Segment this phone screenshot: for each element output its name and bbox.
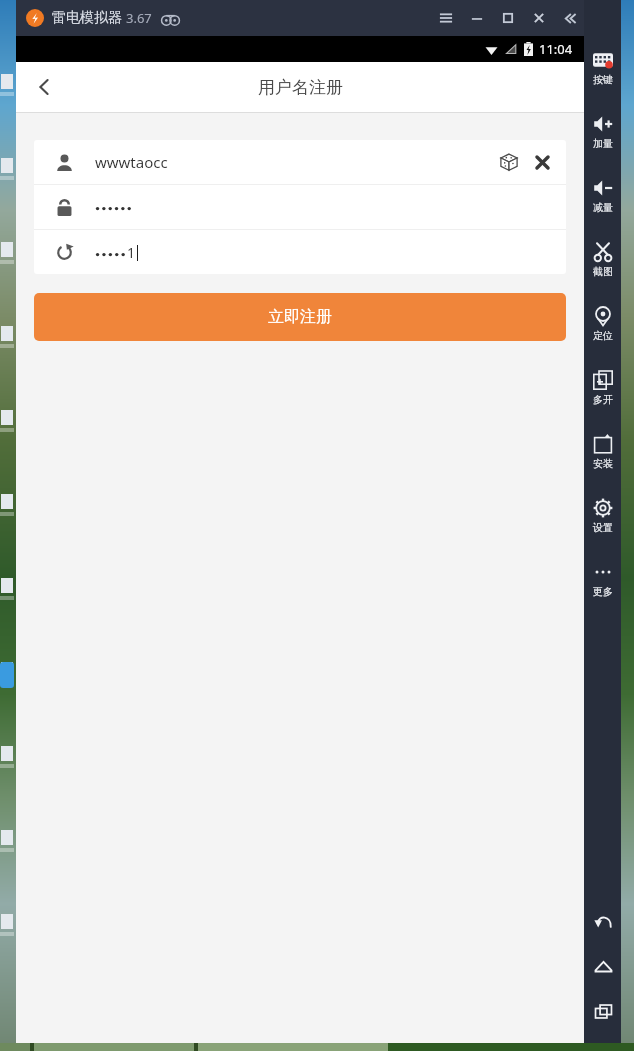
staticText: 定位 xyxy=(593,329,613,342)
button[interactable]: 截图 xyxy=(584,228,621,292)
button[interactable]: 安装 xyxy=(584,420,621,484)
staticText: wwwtaocc xyxy=(95,152,168,172)
staticText: 11:04 xyxy=(539,40,573,58)
button[interactable]: 定位 xyxy=(584,292,621,356)
staticText: 按键 xyxy=(593,73,613,86)
button[interactable]: 按键 xyxy=(584,36,621,100)
button[interactable]: Close xyxy=(523,1,554,35)
staticText: 多开 xyxy=(593,393,613,406)
button[interactable]: 1 xyxy=(34,230,566,274)
staticText: 减量 xyxy=(593,201,613,214)
button[interactable]: 立即注册 xyxy=(34,293,566,341)
button[interactable]: 加量 xyxy=(584,100,621,164)
button[interactable]: Home xyxy=(587,950,619,982)
button[interactable]: Recents xyxy=(587,995,619,1027)
staticText: 用户名注册 xyxy=(258,77,343,98)
staticText: 立即注册 xyxy=(268,307,332,327)
button[interactable]: Minimize xyxy=(461,1,492,35)
button[interactable]: 更多 xyxy=(584,548,621,612)
button[interactable]: Clear xyxy=(527,147,557,177)
button[interactable]: Back xyxy=(22,65,66,109)
staticText: 雷电模拟器 xyxy=(52,9,122,27)
button[interactable]: Back xyxy=(587,905,619,937)
button[interactable]: Game mode xyxy=(159,7,181,29)
staticText: 截图 xyxy=(593,265,613,278)
button[interactable]: 减量 xyxy=(584,164,621,228)
button[interactable]: 设置 xyxy=(584,484,621,548)
button[interactable]: Menu xyxy=(430,1,461,35)
staticText: 设置 xyxy=(593,521,613,534)
staticText: 加量 xyxy=(593,137,613,150)
staticText: 更多 xyxy=(593,585,613,598)
staticText: 3.67 xyxy=(126,9,152,27)
button[interactable] xyxy=(34,185,566,229)
button[interactable]: Random username xyxy=(494,147,524,177)
button[interactable]: 多开 xyxy=(584,356,621,420)
button[interactable]: Maximize xyxy=(492,1,523,35)
button[interactable]: Collapse xyxy=(554,0,584,36)
staticText: 安装 xyxy=(593,457,613,470)
staticText: 1 xyxy=(127,243,136,262)
button[interactable]: wwwtaocc xyxy=(34,140,566,184)
